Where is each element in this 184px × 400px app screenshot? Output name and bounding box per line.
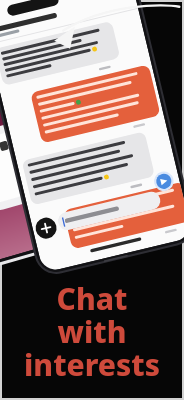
staticText: Chat with interests xyxy=(2,278,182,385)
button[interactable]: Send message xyxy=(149,202,166,219)
button[interactable]: Add attachment xyxy=(74,206,92,224)
button[interactable]: Message input field xyxy=(82,204,142,220)
